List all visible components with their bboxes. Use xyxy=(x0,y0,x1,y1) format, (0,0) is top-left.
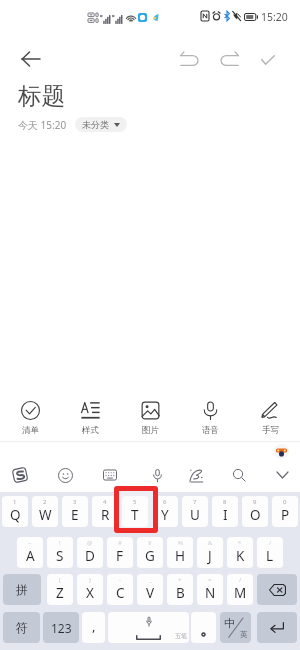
button[interactable]: Hide keyboard xyxy=(268,464,296,486)
button[interactable]: 清单 xyxy=(6,401,54,436)
button[interactable]: 3 xyxy=(62,496,88,527)
button[interactable]: Handwriting xyxy=(182,462,210,488)
button[interactable]: 图片 xyxy=(126,401,174,436)
button[interactable]: / xyxy=(227,574,253,605)
button[interactable] xyxy=(191,612,216,643)
staticText: U xyxy=(190,506,200,524)
staticText: , xyxy=(92,617,96,635)
button[interactable]: Space xyxy=(108,612,189,643)
button[interactable]: = xyxy=(197,574,223,605)
staticText: H xyxy=(175,547,186,565)
staticText: 语音 xyxy=(202,425,219,436)
staticText: K xyxy=(236,547,245,565)
staticText: L xyxy=(266,547,274,565)
button[interactable]: 9 xyxy=(242,496,268,527)
staticText: / xyxy=(239,576,242,584)
staticText: 7 xyxy=(193,498,197,506)
staticText: - xyxy=(119,576,121,584)
staticText: ~ xyxy=(28,539,32,547)
button[interactable]: Emoji xyxy=(51,462,79,488)
button[interactable]: 未分类 xyxy=(75,117,127,132)
button[interactable]: , xyxy=(82,612,105,643)
staticText: V xyxy=(146,584,155,602)
staticText: ¥ xyxy=(148,539,152,547)
button[interactable]: 4 xyxy=(92,496,118,527)
button[interactable]: % xyxy=(167,537,193,568)
button[interactable]: @ xyxy=(77,537,103,568)
button[interactable]: 符 xyxy=(3,612,40,643)
button[interactable]: 8 xyxy=(212,496,238,527)
button[interactable]: 2 xyxy=(32,496,58,527)
button[interactable]: Sogou xyxy=(6,462,34,488)
button[interactable]: / xyxy=(257,537,283,568)
button[interactable]: 语音 xyxy=(186,401,234,436)
staticText: A xyxy=(26,547,35,565)
button[interactable]: Keyboard layout xyxy=(96,462,124,488)
button[interactable]: Done xyxy=(252,44,284,76)
button[interactable]: Enter xyxy=(257,612,297,643)
staticText: 符 xyxy=(16,620,28,635)
staticText: # xyxy=(118,539,122,547)
staticText: J xyxy=(208,547,212,565)
button[interactable]: _ xyxy=(137,574,163,605)
staticText: 英 xyxy=(240,630,248,639)
button[interactable]: Backspace xyxy=(257,574,297,605)
staticText: 123 xyxy=(51,620,72,636)
staticText: 9 xyxy=(253,498,257,506)
button[interactable]: 5 xyxy=(122,496,148,527)
staticText: ( xyxy=(59,576,61,584)
staticText: % xyxy=(178,539,183,547)
button[interactable]: * xyxy=(227,537,253,568)
button[interactable]: Search xyxy=(225,462,253,488)
button[interactable]: ¥ xyxy=(137,537,163,568)
staticText: ) xyxy=(89,576,91,584)
staticText: O xyxy=(250,506,261,524)
staticText: T xyxy=(131,506,139,524)
staticText: 5 xyxy=(133,498,137,506)
button[interactable]: Undo xyxy=(173,44,205,76)
button[interactable]: 7 xyxy=(182,496,208,527)
button[interactable]: # xyxy=(107,537,133,568)
button[interactable]: - xyxy=(107,574,133,605)
staticText: 2 xyxy=(43,498,47,506)
button[interactable]: Chinese / English xyxy=(220,612,251,643)
staticText: F xyxy=(116,547,124,565)
staticText: M xyxy=(234,584,247,602)
staticText: G xyxy=(145,547,155,565)
staticText: 五笔 xyxy=(175,632,187,640)
button[interactable]: 样式 xyxy=(66,401,114,436)
button[interactable]: ) xyxy=(77,574,103,605)
staticText: 6 xyxy=(163,498,167,506)
button[interactable]: 123 xyxy=(43,612,79,643)
button[interactable]: Back xyxy=(14,43,46,75)
button[interactable]: 5 xyxy=(122,496,148,527)
button[interactable]: Redo xyxy=(214,44,246,76)
staticText: S xyxy=(56,547,64,565)
staticText: C xyxy=(116,584,125,602)
staticText: 15:20 xyxy=(261,10,288,24)
staticText: 未分类 xyxy=(82,119,109,130)
staticText: I xyxy=(223,506,228,524)
button[interactable]: & xyxy=(197,537,223,568)
button[interactable]: ~ xyxy=(17,537,43,568)
button[interactable]: ! xyxy=(47,537,73,568)
staticText: P xyxy=(281,506,290,524)
staticText: + xyxy=(178,576,182,584)
staticText: X xyxy=(86,584,94,602)
button[interactable]: 0 xyxy=(272,496,298,527)
staticText: Y xyxy=(161,506,169,524)
staticText: Q xyxy=(10,506,21,524)
staticText: ! xyxy=(59,539,61,547)
staticText: 0 xyxy=(283,498,287,506)
button[interactable]: 1 xyxy=(2,496,28,527)
staticText: 清单 xyxy=(22,425,39,436)
staticText: 4 xyxy=(103,498,107,506)
staticText: D xyxy=(85,547,95,565)
button[interactable]: Voice input xyxy=(143,462,171,488)
button[interactable]: 6 xyxy=(152,496,178,527)
button[interactable]: + xyxy=(167,574,193,605)
button[interactable]: ( xyxy=(47,574,73,605)
button[interactable]: 手写 xyxy=(246,401,294,436)
button[interactable]: 拼 xyxy=(3,574,41,605)
staticText: = xyxy=(208,576,212,584)
